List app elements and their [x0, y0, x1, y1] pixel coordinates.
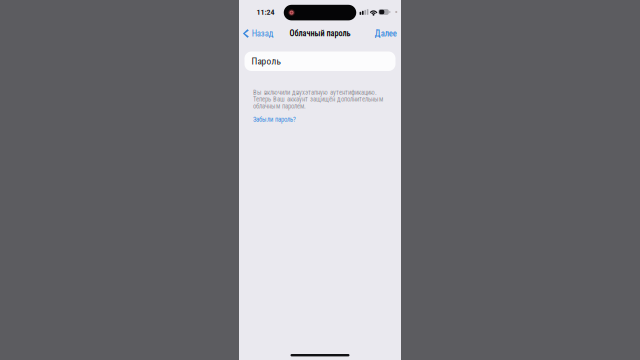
staticText: 11:24 — [256, 7, 274, 17]
button[interactable]: Пароль — [244, 51, 395, 71]
button[interactable]: Далее — [370, 25, 401, 42]
button[interactable]: Забыли пароль? — [253, 116, 296, 123]
staticText: Далее — [375, 28, 397, 39]
staticText: Облачный пароль — [289, 29, 350, 38]
staticText: Вы включили двухэтапную аутентификацию. … — [253, 89, 383, 110]
staticText: Забыли пароль? — [253, 116, 296, 123]
staticText: Пароль — [251, 56, 280, 67]
staticText: Назад — [252, 28, 274, 39]
button[interactable]: Назад — [239, 25, 279, 42]
